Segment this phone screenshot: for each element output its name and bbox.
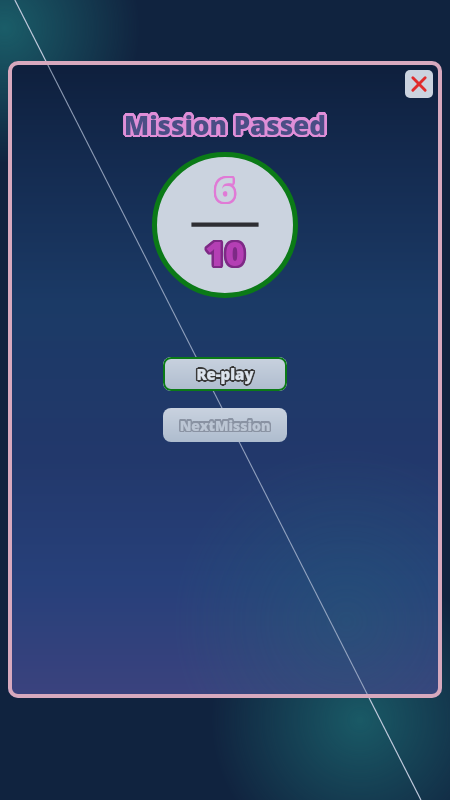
button[interactable] [163,408,287,442]
button[interactable]: Close [405,70,433,98]
button[interactable] [163,357,287,391]
